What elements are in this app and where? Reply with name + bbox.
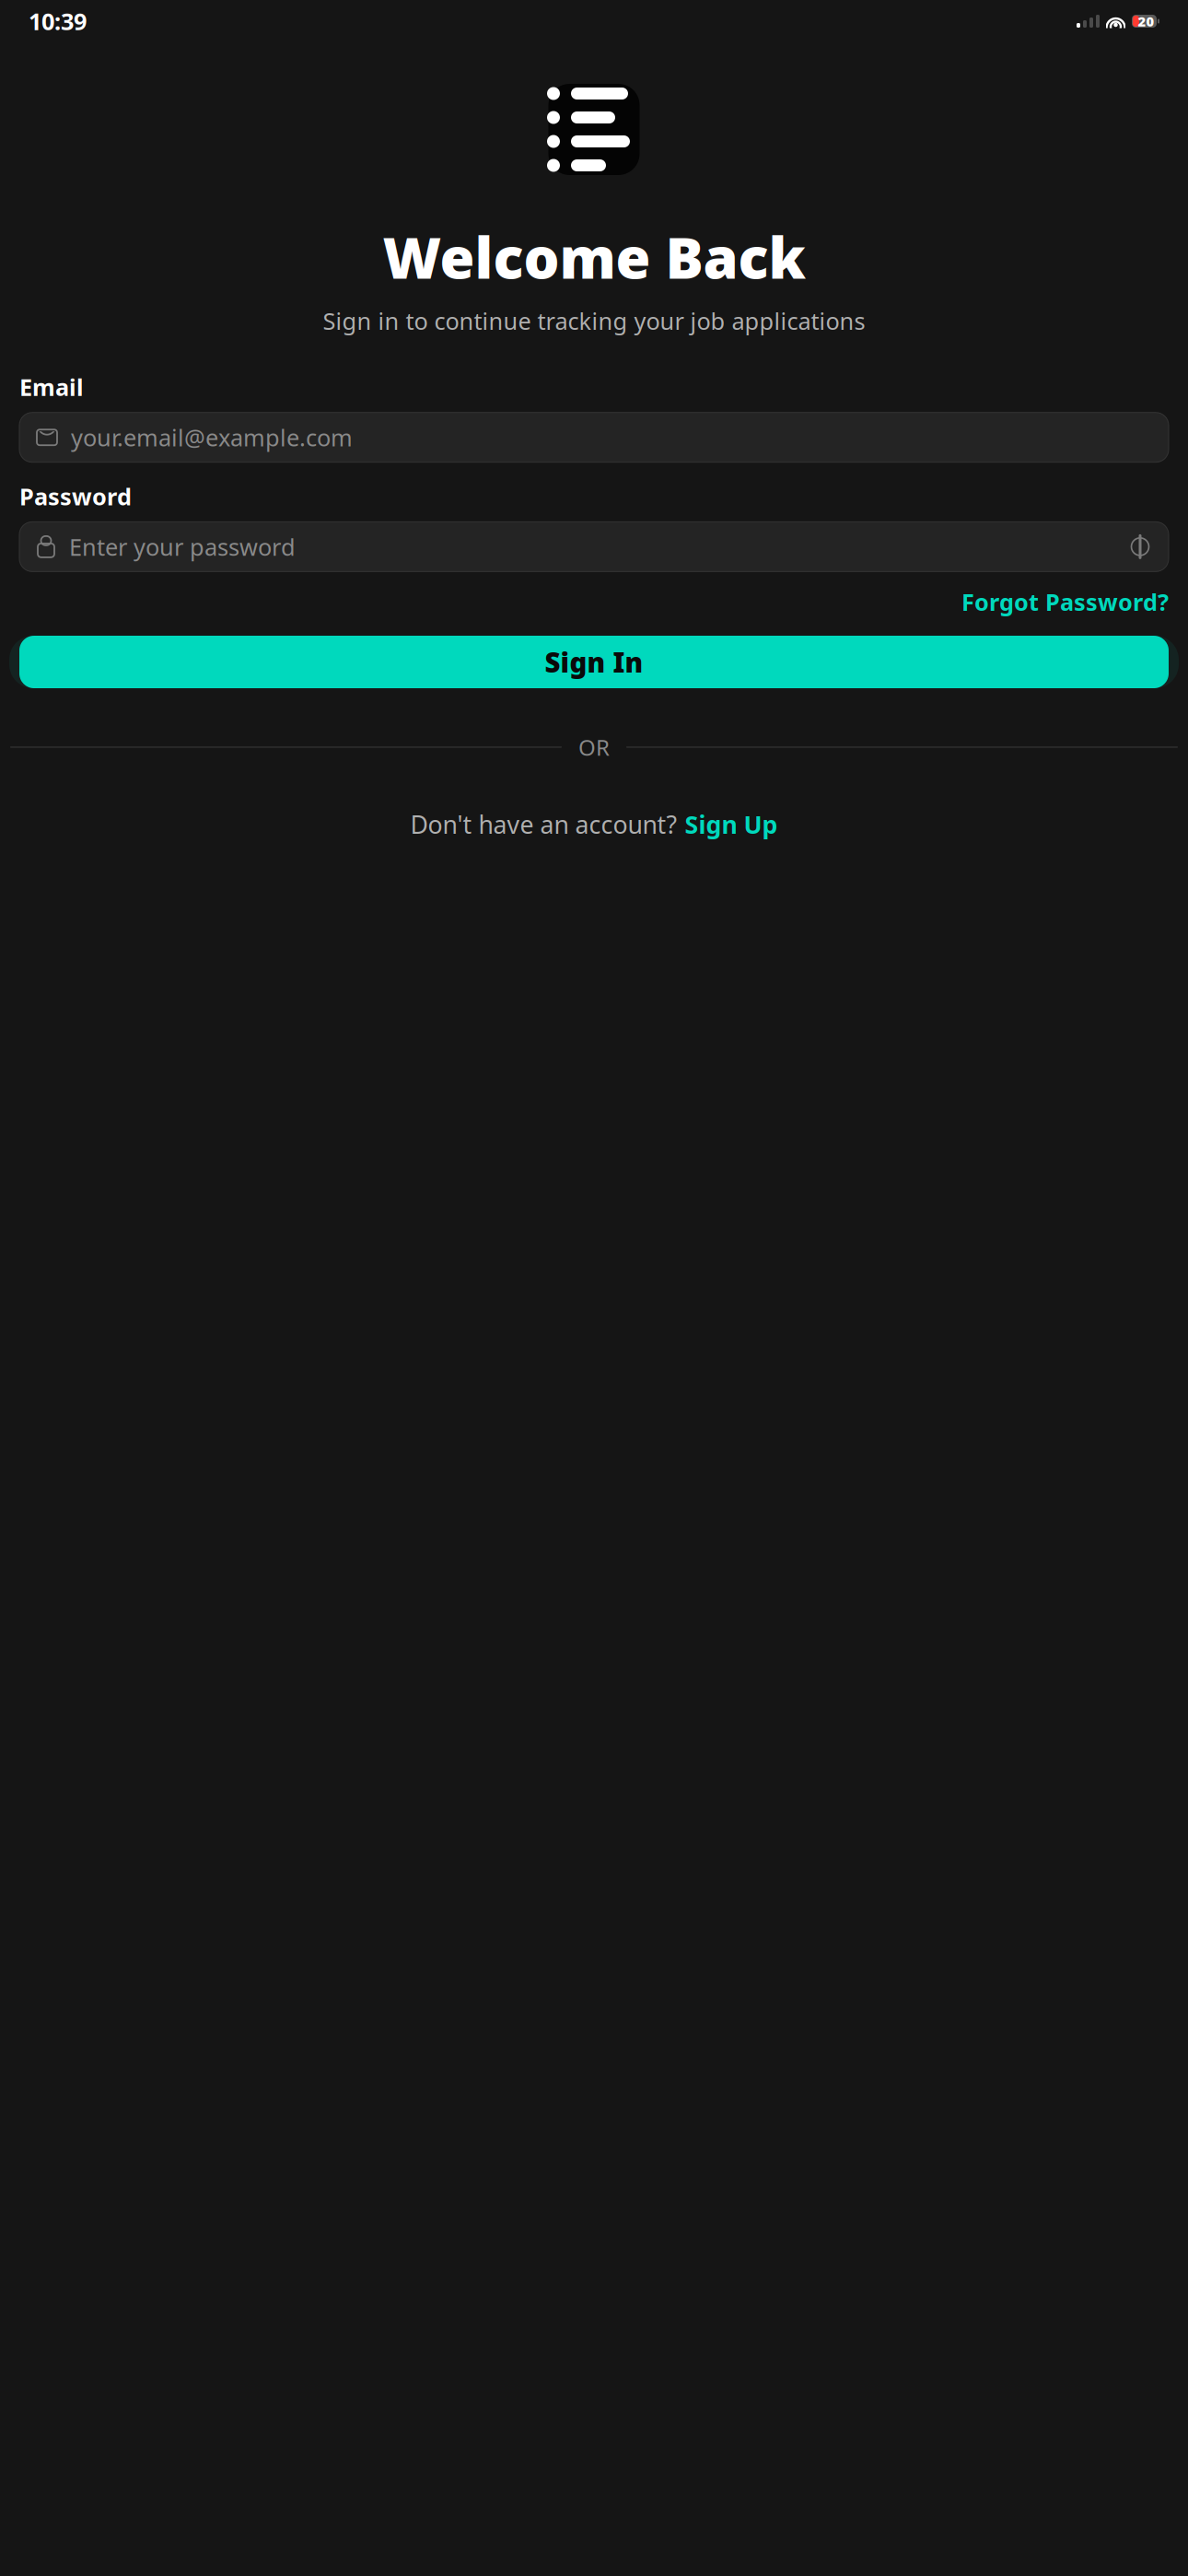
button[interactable]: your.email@example.com (19, 412, 1169, 462)
staticText: Welcome Back (383, 219, 805, 294)
button[interactable]: Forgot Password? (961, 586, 1169, 617)
staticText: Sign In (545, 644, 643, 680)
staticText: 10:39 (29, 6, 87, 37)
staticText: Enter your password (69, 531, 296, 562)
staticText: Password (19, 481, 132, 512)
button[interactable]: Show password (1128, 537, 1152, 557)
staticText: Forgot Password? (961, 586, 1169, 617)
staticText: Email (19, 371, 84, 402)
button[interactable]: Sign In (19, 636, 1169, 688)
staticText: Sign Up (685, 808, 778, 841)
staticText: your.email@example.com (71, 422, 353, 453)
staticText: Don't have an account? (410, 808, 677, 841)
staticText: 20 (1138, 12, 1154, 30)
staticText: OR (578, 732, 610, 762)
button[interactable]: Don't have an account? (410, 808, 778, 841)
staticText: Sign in to continue tracking your job ap… (323, 305, 865, 336)
